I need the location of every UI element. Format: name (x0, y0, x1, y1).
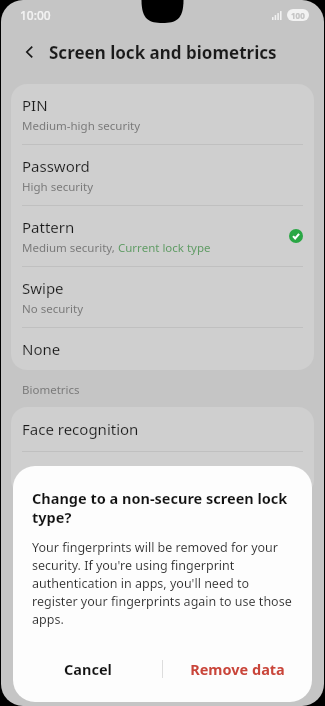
button[interactable]: None (11, 328, 314, 370)
staticText: Password (22, 156, 90, 176)
staticText: Your fingerprints will be removed for yo… (32, 539, 293, 628)
staticText: Change to a non-secure screen lock type? (32, 488, 293, 527)
staticText: PIN (22, 95, 48, 115)
button[interactable]: Cancel (13, 646, 162, 692)
staticText: Swipe (22, 278, 64, 298)
staticText: Medium-high security (22, 118, 141, 134)
button[interactable]: Home (139, 660, 187, 706)
staticText: Biometrics (22, 382, 80, 398)
staticText: High security (22, 179, 94, 195)
staticText: 10:00 (20, 7, 51, 23)
staticText: No security (22, 301, 84, 317)
staticText: Cancel (64, 659, 112, 679)
staticText: Pattern (22, 217, 75, 237)
button[interactable]: Swipe (11, 267, 314, 327)
button[interactable]: Recent apps (46, 660, 94, 706)
button[interactable]: Pattern (11, 206, 314, 266)
staticText: Screen lock and biometrics (49, 41, 277, 64)
button[interactable]: Fingerprints (11, 452, 314, 496)
staticText: Current lock type (118, 240, 211, 256)
button[interactable]: Face recognition (11, 407, 314, 451)
staticText: 100 (291, 10, 305, 21)
staticText: Remove data (190, 659, 285, 679)
staticText: None (22, 339, 61, 359)
staticText: Medium security, (22, 240, 118, 256)
button[interactable]: PIN (11, 84, 314, 144)
button[interactable]: Back (231, 660, 279, 706)
button[interactable]: Remove data (163, 646, 312, 692)
staticText: Face recognition (22, 419, 139, 439)
staticText: Fingerprints (22, 464, 108, 484)
button[interactable]: Back (15, 37, 45, 67)
button[interactable]: Password (11, 145, 314, 205)
